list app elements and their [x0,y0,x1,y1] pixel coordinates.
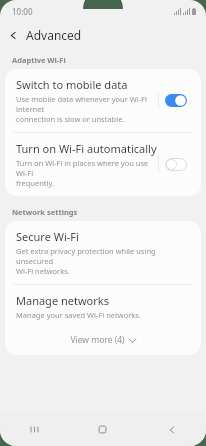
staticText: Secure Wi-Fi [16,229,79,244]
staticText: Adaptive Wi-Fi [12,55,66,65]
button[interactable]: Switch to mobile data [5,69,201,132]
staticText: 10:00 [12,6,33,17]
button[interactable]: Home [68,413,137,446]
button[interactable]: Toggle on [159,90,193,111]
staticText: Advanced [26,27,82,43]
button[interactable]: Recents [0,413,68,446]
button[interactable]: Turn on Wi-Fi automatically [5,133,201,196]
staticText: Turn on Wi-Fi automatically [16,141,157,156]
button[interactable]: Toggle off [159,154,193,175]
staticText: Use mobile data whenever your Wi-Fi inte… [16,94,158,124]
button[interactable]: Back [137,413,206,446]
button[interactable]: View more (4) [5,328,201,355]
staticText: Manage networks [16,293,109,308]
staticText: Turn on Wi-Fi in places where you use Wi… [16,158,158,188]
staticText: Get extra privacy protection while using… [16,246,191,276]
staticText: Manage your saved Wi-Fi networks. [16,310,141,320]
staticText: Network settings [12,207,78,217]
button[interactable]: Back [0,22,26,48]
button[interactable]: Secure Wi-Fi [5,221,201,284]
staticText: Switch to mobile data [16,77,128,92]
button[interactable]: Manage networks [5,285,201,328]
staticText: View more (4) [70,334,125,346]
